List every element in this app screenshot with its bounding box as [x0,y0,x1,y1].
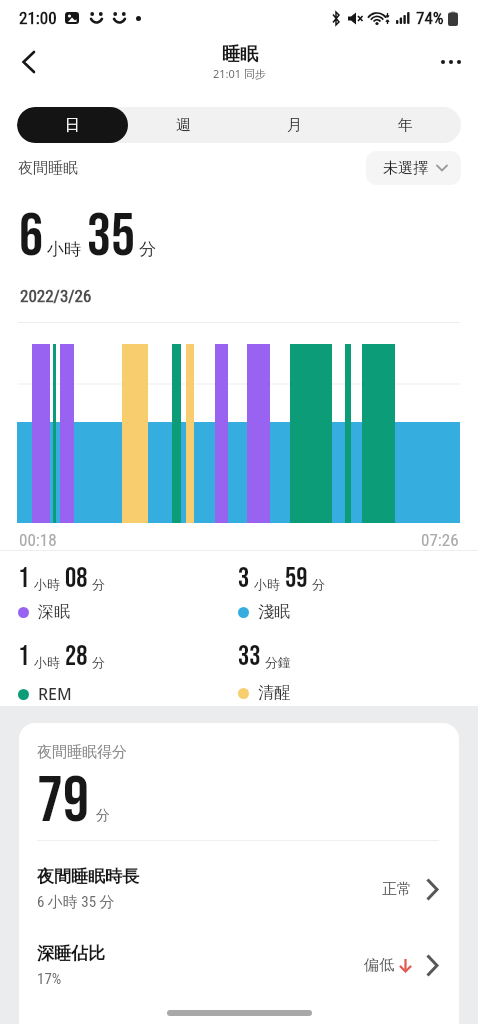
staticText: 小時 [254,576,280,592]
staticText: 淺眠 [258,602,290,622]
staticText: 小時 [47,239,81,260]
staticText: 分鐘 [265,654,291,670]
staticText: 00:18 [19,530,57,550]
staticText: 夜間睡眠 [18,159,78,178]
staticText: 小時 [34,576,60,592]
staticText: 59 [285,562,308,596]
staticText: REM [38,683,72,705]
staticText: 21:01 同步 [213,66,266,81]
button[interactable]: 月 [239,107,350,143]
staticText: 年 [398,116,413,135]
staticText: 6 小時 35 分 [37,893,115,912]
staticText: 深睡佔比 [37,943,105,964]
staticText: 1 [18,640,30,674]
button[interactable]: 深睡佔比 [37,912,439,988]
staticText: 分 [92,576,105,592]
staticText: 清醒 [258,683,290,703]
staticText: 週 [176,116,191,135]
staticText: 正常 [382,880,412,899]
staticText: 74% [416,8,444,28]
staticText: 6 [19,201,43,273]
staticText: 28 [65,640,88,674]
staticText: 07:26 [421,530,459,550]
staticText: 08 [65,562,88,596]
button[interactable]: 未選擇 [366,151,461,185]
staticText: 深眠 [38,602,70,622]
staticText: 偏低 [364,956,394,975]
staticText: 分 [312,576,325,592]
staticText: 月 [287,116,302,135]
staticText: 17% [37,970,62,988]
staticText: 2022/3/26 [20,286,92,306]
button[interactable] [14,48,42,76]
staticText: 33 [238,640,261,674]
button[interactable] [436,47,466,77]
staticText: 分 [92,654,105,670]
button[interactable]: 週 [128,107,239,143]
staticText: 分 [139,239,156,260]
staticText: 35 [87,201,135,273]
staticText: 睡眠 [222,43,258,66]
staticText: 1 [18,562,30,596]
staticText: 79 [37,762,90,840]
staticText: 未選擇 [383,159,428,178]
button[interactable]: 日 [17,107,128,143]
staticText: 夜間睡眠時長 [37,866,139,887]
staticText: 日 [65,116,80,135]
button[interactable]: 夜間睡眠時長 [37,841,439,912]
staticText: 21:00 [19,8,57,28]
staticText: 小時 [34,654,60,670]
button[interactable]: 年 [350,107,461,143]
staticText: 3 [238,562,250,596]
staticText: 夜間睡眠得分 [37,743,127,762]
staticText: 分 [96,807,110,825]
